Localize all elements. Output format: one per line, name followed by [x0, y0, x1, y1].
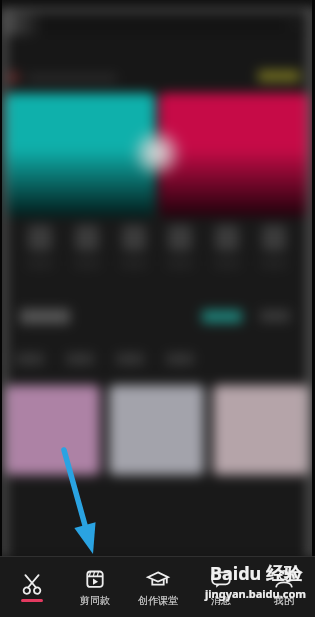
staticText: jingyan.baidu.com [205, 586, 307, 601]
button[interactable]: Promo [258, 70, 300, 82]
button[interactable] [159, 93, 308, 217]
button[interactable]: Filter [166, 353, 194, 365]
staticText: 创作课堂 [138, 594, 178, 607]
button[interactable]: Tool [74, 225, 100, 268]
button[interactable]: Cloud [202, 310, 242, 323]
staticText: 我的 [274, 594, 294, 607]
button[interactable]: Tool [27, 225, 53, 268]
staticText: 84% [288, 19, 304, 30]
button[interactable]: Tool [214, 225, 240, 268]
button[interactable]: 我的 [252, 557, 315, 617]
button[interactable]: Filter [116, 353, 144, 365]
button[interactable]: Filter [66, 353, 94, 365]
button[interactable]: 创作课堂 [126, 557, 189, 617]
button[interactable] [109, 385, 204, 475]
button[interactable] [6, 93, 155, 217]
button[interactable]: Tool [167, 225, 193, 268]
button[interactable] [213, 385, 308, 475]
button[interactable]: Tool [261, 225, 287, 268]
button[interactable]: 剪同款 [63, 557, 126, 617]
button[interactable]: Tool [121, 225, 147, 268]
button[interactable] [6, 385, 100, 475]
button[interactable]: 剪辑 [0, 557, 63, 617]
button[interactable]: 消息 [189, 557, 252, 617]
button[interactable]: Logo [8, 71, 19, 84]
staticText: 消息 [211, 594, 231, 607]
staticText: Baidu 经验 [210, 561, 302, 586]
staticText: 剪同款 [80, 594, 110, 607]
